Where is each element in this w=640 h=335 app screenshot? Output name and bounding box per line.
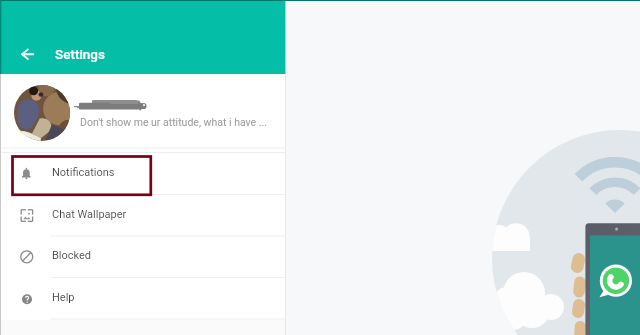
staticText: Don't show me ur attitude, what i have .… — [80, 116, 268, 128]
button[interactable]: Chat Wallpaper — [0, 195, 285, 237]
staticText: Blocked — [52, 249, 92, 262]
button[interactable]: Notifications — [0, 153, 285, 195]
staticText: Help — [52, 291, 75, 304]
button[interactable]: Help — [0, 278, 285, 320]
button[interactable]: Blocked — [0, 236, 285, 278]
staticText: Settings — [55, 46, 105, 62]
staticText: Notifications — [52, 166, 115, 179]
button[interactable]: Back — [13, 40, 41, 68]
staticText: Chat Wallpaper — [52, 208, 127, 221]
button[interactable]: Don't show me ur attitude, what i have .… — [0, 74, 285, 148]
